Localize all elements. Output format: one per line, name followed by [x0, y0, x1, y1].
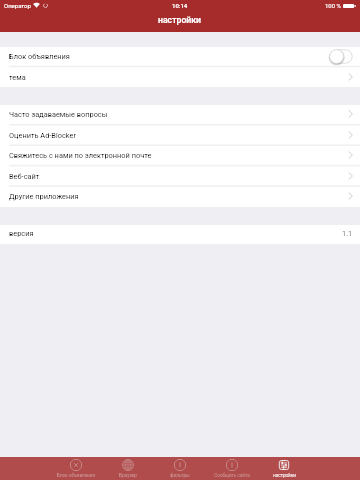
staticText: Блок объявления — [57, 473, 95, 478]
button[interactable]: Другие приложения — [0, 186, 360, 206]
button[interactable]: тема — [0, 67, 360, 87]
staticText: 1.1 — [342, 229, 353, 238]
staticText: Блок объявления — [9, 52, 70, 61]
staticText: тема — [9, 73, 26, 82]
staticText: Веб-сайт — [9, 172, 40, 181]
button[interactable]: Веб-сайт — [0, 166, 360, 186]
staticText: Браузер — [119, 473, 137, 478]
staticText: Часто задаваемые вопросы — [9, 110, 108, 119]
staticText: Сообщить сайта — [214, 473, 250, 478]
button[interactable]: Toggle ad block — [329, 49, 353, 64]
staticText: Другие приложения — [9, 192, 79, 201]
staticText: фильтры — [170, 473, 190, 478]
staticText: Оператор — [4, 2, 31, 9]
staticText: настройки — [273, 473, 296, 478]
staticText: настройки — [158, 15, 202, 25]
button[interactable]: Часто задаваемые вопросы — [0, 104, 360, 124]
staticText: 10:14 — [172, 2, 188, 9]
button[interactable]: Оценить Ad-Blocker — [0, 125, 360, 145]
staticText: Оценить Ad-Blocker — [9, 131, 76, 140]
button[interactable]: настройки — [258, 457, 310, 480]
button[interactable]: Сообщить сайта — [206, 457, 258, 480]
button[interactable]: Блок объявления — [0, 46, 360, 66]
button[interactable]: Свяжитесь с нами по электронной почте — [0, 145, 360, 165]
button[interactable]: фильтры — [154, 457, 206, 480]
button[interactable]: Блок объявления — [50, 457, 102, 480]
button[interactable]: версия — [0, 224, 360, 243]
staticText: версия — [9, 229, 34, 238]
staticText: 100 % — [325, 2, 341, 9]
staticText: Свяжитесь с нами по электронной почте — [9, 151, 152, 160]
button[interactable]: Браузер — [102, 457, 154, 480]
